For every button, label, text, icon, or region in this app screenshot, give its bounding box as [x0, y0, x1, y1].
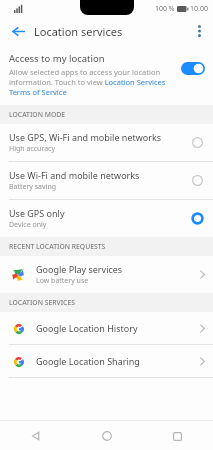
staticText: RECENT LOCATION REQUESTS — [9, 242, 106, 251]
staticText: Use GPS, Wi-Fi and mobile networks — [9, 131, 162, 143]
staticText: Google Location History — [36, 322, 138, 334]
button[interactable]: Back — [0, 422, 71, 450]
staticText: Battery saving — [9, 182, 57, 192]
button[interactable]: Google Play services — [0, 256, 213, 293]
staticText: Allow selected apps to access your locat… — [9, 67, 175, 97]
button[interactable]: Use GPS, Wi-Fi and mobile networks — [0, 124, 213, 161]
staticText: Use Wi-Fi and mobile networks — [9, 169, 140, 181]
staticText: LOCATION MODE — [9, 110, 66, 119]
button[interactable]: Access to my location — [0, 45, 213, 105]
staticText: LOCATION SERVICES — [9, 298, 75, 307]
staticText: Google Play services — [36, 263, 123, 275]
button[interactable]: Recent apps — [142, 422, 213, 450]
staticText: Use GPS only — [9, 207, 65, 219]
staticText: 100 % — [155, 4, 175, 14]
staticText: Access to my location — [9, 52, 105, 65]
staticText: 10.00 — [190, 4, 208, 14]
button[interactable]: Home — [71, 422, 142, 450]
button[interactable]: Use GPS only — [0, 200, 213, 237]
staticText: Location services — [34, 24, 123, 39]
button[interactable]: Back — [7, 20, 29, 42]
staticText: Device only — [9, 220, 47, 230]
button[interactable]: More options — [188, 20, 210, 42]
staticText: High accuracy — [9, 144, 56, 154]
staticText: Google Location Sharing — [36, 355, 140, 367]
button[interactable]: Use Wi-Fi and mobile networks — [0, 162, 213, 199]
button[interactable]: Google Location History — [0, 312, 213, 344]
staticText: Low battery use — [36, 276, 89, 286]
button[interactable]: Google Location Sharing — [0, 345, 213, 377]
